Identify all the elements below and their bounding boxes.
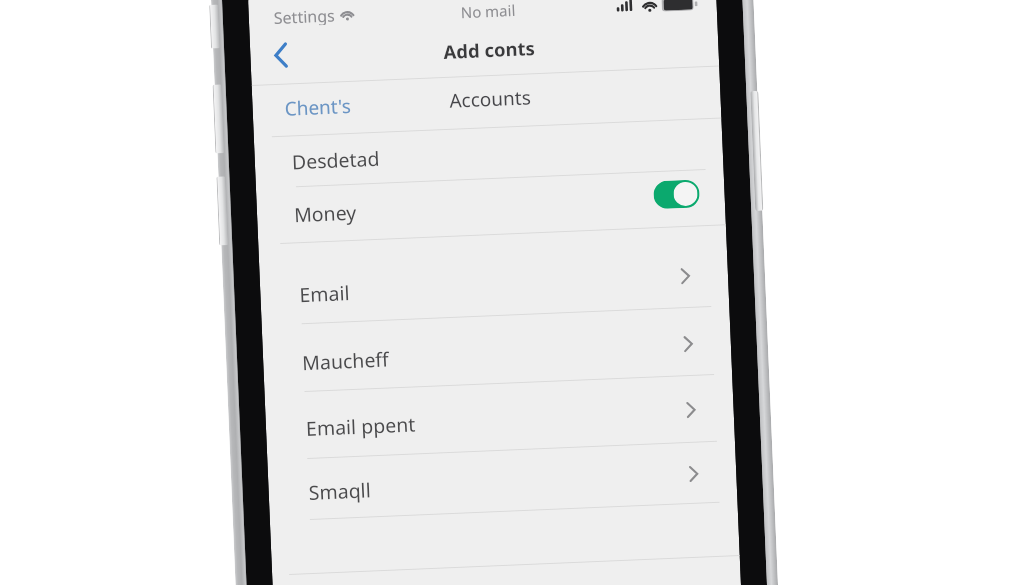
staticText: Email ppent — [305, 410, 416, 442]
staticText: Accounts — [449, 84, 532, 114]
other: Open Maucheff — [673, 329, 702, 358]
button[interactable]: Smaqll — [270, 501, 740, 575]
button[interactable]: Toggle Money — [653, 179, 700, 209]
other: Open Smaqll — [679, 459, 708, 488]
button[interactable]: Accounts — [441, 76, 540, 122]
staticText: Chent's — [284, 93, 352, 122]
staticText: Settings — [273, 4, 335, 27]
other: Wi-Fi — [641, 0, 658, 12]
staticText: No mail — [460, 0, 516, 22]
other: Open Email ppent — [676, 395, 705, 424]
staticText: Add conts — [443, 35, 536, 64]
staticText: Money — [293, 199, 358, 228]
staticText: Smaqll — [308, 476, 371, 506]
button[interactable]: Email ppent — [267, 440, 737, 521]
staticText: Desdetad — [291, 145, 380, 175]
other: Cellular signal — [616, 0, 634, 12]
button[interactable]: Chent's — [268, 83, 367, 131]
other: Open Email — [670, 261, 699, 291]
other: Battery — [661, 0, 698, 12]
staticText: Maucheff — [302, 345, 390, 376]
button[interactable]: Back — [260, 34, 301, 76]
button[interactable]: Money — [256, 168, 726, 244]
button[interactable]: Desdetad — [254, 117, 723, 188]
staticText: Email — [299, 279, 351, 308]
button[interactable]: Maucheff — [264, 373, 735, 460]
button[interactable]: Email — [262, 305, 732, 393]
